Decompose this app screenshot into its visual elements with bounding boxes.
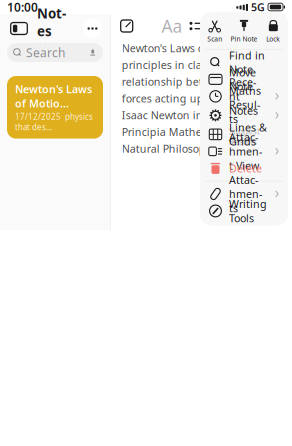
staticText: 1 Note	[37, 40, 65, 52]
button[interactable]: Attachment View	[200, 143, 288, 160]
staticText: Delete	[229, 161, 262, 175]
staticText: Search	[26, 44, 65, 60]
staticText: Notes	[37, 5, 66, 40]
staticText: Newton's Laws of Motion	[122, 41, 247, 55]
staticText: Aa	[161, 14, 182, 37]
button[interactable]: Writing Tools	[200, 202, 288, 219]
staticText: Lock	[266, 34, 280, 43]
staticText: 5G	[251, 0, 265, 14]
staticText: Suggest Results	[229, 126, 260, 147]
button[interactable]: Delete	[200, 160, 288, 177]
button[interactable]: Pin Note	[229, 19, 259, 43]
staticText: Find in Note	[229, 48, 265, 76]
button[interactable]: Attachments	[200, 185, 288, 202]
staticText: Maths Results	[229, 83, 261, 126]
button[interactable]: Lock	[259, 19, 288, 43]
staticText: Newton's Laws of Motio…	[15, 82, 92, 110]
button[interactable]: Checklist	[184, 15, 208, 37]
staticText: principles in classical phy	[122, 58, 251, 72]
button[interactable]: More	[83, 19, 102, 38]
button[interactable]: New Note	[115, 15, 139, 37]
staticText: Isaac Newton in his work	[122, 108, 248, 122]
staticText: Move Note	[229, 65, 256, 93]
button[interactable]: Maths Results	[200, 105, 288, 126]
button[interactable]: Newton's Laws of Motio…	[7, 76, 103, 139]
button[interactable]: Hide Sidebar	[8, 18, 30, 38]
button[interactable]: Recent Notes	[200, 88, 288, 105]
staticText: Scan	[207, 34, 222, 43]
staticText: forces acting upon it. Th	[122, 91, 246, 105]
button[interactable]: Move Note	[200, 71, 288, 88]
staticText: 17/12/2025 physics that des…	[15, 111, 93, 132]
button[interactable]: Find in Note	[200, 54, 288, 71]
staticText: Pin Note	[230, 34, 257, 43]
button[interactable]: Search	[7, 43, 103, 62]
staticText: Attachments	[229, 173, 262, 215]
button[interactable]: Lines & Grids	[200, 126, 288, 143]
staticText: 10:00	[7, 0, 38, 15]
staticText: Principia Mathematica (M	[122, 125, 252, 139]
staticText: Lines & Grids	[229, 120, 267, 148]
button[interactable]: Format	[160, 15, 184, 37]
button[interactable]: Scan	[200, 19, 229, 43]
staticText: Recent Notes	[229, 75, 258, 118]
staticText: Natural Philosophy), pub	[122, 142, 248, 156]
staticText: Attachment View	[229, 130, 262, 173]
staticText: relationship between an	[122, 74, 246, 89]
staticText: Writing Tools	[229, 197, 267, 225]
